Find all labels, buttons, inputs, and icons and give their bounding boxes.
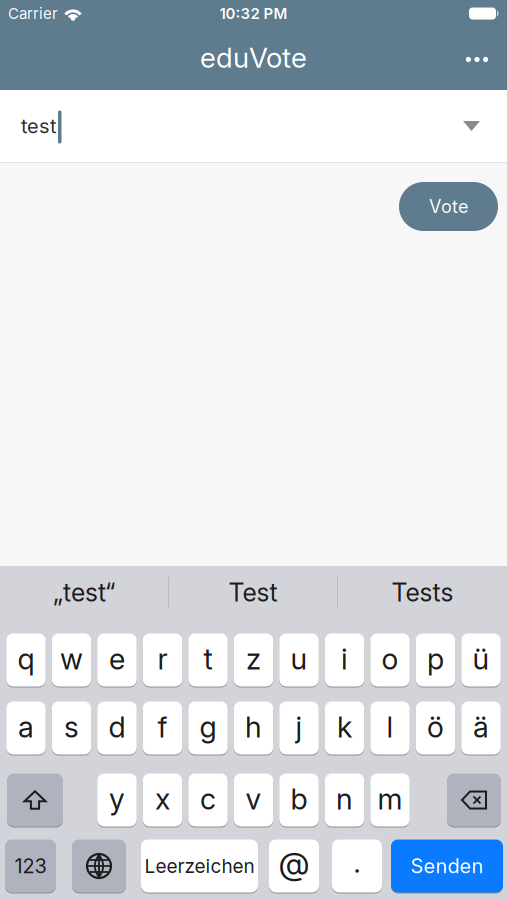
- button[interactable]: Delete: [447, 773, 501, 827]
- staticText: Carrier: [8, 4, 58, 22]
- staticText: r: [157, 641, 167, 677]
- button[interactable]: 123: [5, 839, 56, 893]
- staticText: ö: [427, 709, 444, 745]
- button[interactable]: Senden: [391, 839, 503, 893]
- staticText: y: [109, 781, 125, 817]
- button[interactable]: e: [97, 633, 137, 687]
- button[interactable]: t: [188, 633, 228, 687]
- staticText: s: [64, 709, 79, 745]
- button[interactable]: w: [52, 633, 91, 687]
- staticText: Tests: [391, 577, 453, 608]
- staticText: test: [21, 114, 57, 138]
- button[interactable]: s: [52, 701, 91, 755]
- staticText: x: [155, 781, 170, 817]
- button[interactable]: v: [234, 773, 273, 827]
- staticText: l: [386, 709, 393, 745]
- staticText: Leerzeichen: [144, 854, 254, 877]
- staticText: Senden: [410, 854, 483, 878]
- staticText: ä: [473, 709, 489, 745]
- button[interactable]: test: [0, 90, 507, 163]
- button[interactable]: Vote: [399, 182, 498, 231]
- button[interactable]: c: [188, 773, 228, 827]
- button[interactable]: g: [188, 701, 228, 755]
- staticText: o: [381, 641, 398, 677]
- button[interactable]: ö: [416, 701, 455, 755]
- staticText: 10:32 PM: [219, 4, 287, 22]
- staticText: e: [109, 641, 125, 677]
- button[interactable]: Leerzeichen: [141, 839, 258, 893]
- button[interactable]: „test“: [0, 566, 168, 619]
- staticText: q: [17, 641, 34, 677]
- staticText: c: [200, 781, 216, 817]
- staticText: p: [427, 641, 444, 677]
- staticText: f: [157, 709, 167, 745]
- staticText: j: [295, 709, 302, 745]
- button[interactable]: q: [6, 633, 46, 687]
- button[interactable]: x: [143, 773, 182, 827]
- staticText: a: [18, 709, 34, 745]
- button[interactable]: u: [279, 633, 319, 687]
- staticText: .: [353, 847, 360, 879]
- button[interactable]: Next keyboard: [72, 839, 126, 893]
- staticText: z: [246, 641, 261, 677]
- button[interactable]: m: [370, 773, 410, 827]
- staticText: w: [60, 641, 83, 677]
- button[interactable]: d: [97, 701, 137, 755]
- staticText: @: [278, 844, 309, 883]
- button[interactable]: a: [6, 701, 46, 755]
- staticText: b: [290, 781, 307, 817]
- button[interactable]: f: [143, 701, 182, 755]
- staticText: i: [341, 641, 348, 677]
- button[interactable]: z: [234, 633, 273, 687]
- button[interactable]: j: [279, 701, 319, 755]
- staticText: eduVote: [200, 41, 307, 74]
- staticText: ü: [472, 641, 489, 677]
- button[interactable]: .: [332, 839, 382, 893]
- button[interactable]: r: [143, 633, 182, 687]
- button[interactable]: y: [97, 773, 137, 827]
- button[interactable]: ä: [461, 701, 501, 755]
- button[interactable]: o: [370, 633, 410, 687]
- staticText: 123: [14, 854, 46, 878]
- button[interactable]: k: [325, 701, 364, 755]
- staticText: d: [108, 709, 125, 745]
- staticText: g: [199, 709, 216, 745]
- staticText: t: [203, 641, 212, 677]
- button[interactable]: n: [325, 773, 364, 827]
- staticText: n: [336, 781, 353, 817]
- button[interactable]: Tests: [338, 566, 507, 619]
- staticText: k: [337, 709, 352, 745]
- staticText: v: [245, 781, 261, 817]
- button[interactable]: Shift: [7, 773, 63, 827]
- button[interactable]: Test: [169, 566, 337, 619]
- staticText: u: [290, 641, 307, 677]
- staticText: Test: [228, 577, 277, 608]
- staticText: m: [377, 781, 402, 817]
- button[interactable]: p: [416, 633, 455, 687]
- staticText: Vote: [429, 196, 468, 217]
- button[interactable]: i: [325, 633, 364, 687]
- button[interactable]: @: [269, 839, 319, 893]
- button[interactable]: b: [279, 773, 319, 827]
- staticText: h: [245, 709, 262, 745]
- button[interactable]: h: [234, 701, 273, 755]
- button[interactable]: More options: [455, 36, 499, 80]
- staticText: „test“: [53, 577, 115, 608]
- button[interactable]: ü: [461, 633, 501, 687]
- button[interactable]: l: [370, 701, 410, 755]
